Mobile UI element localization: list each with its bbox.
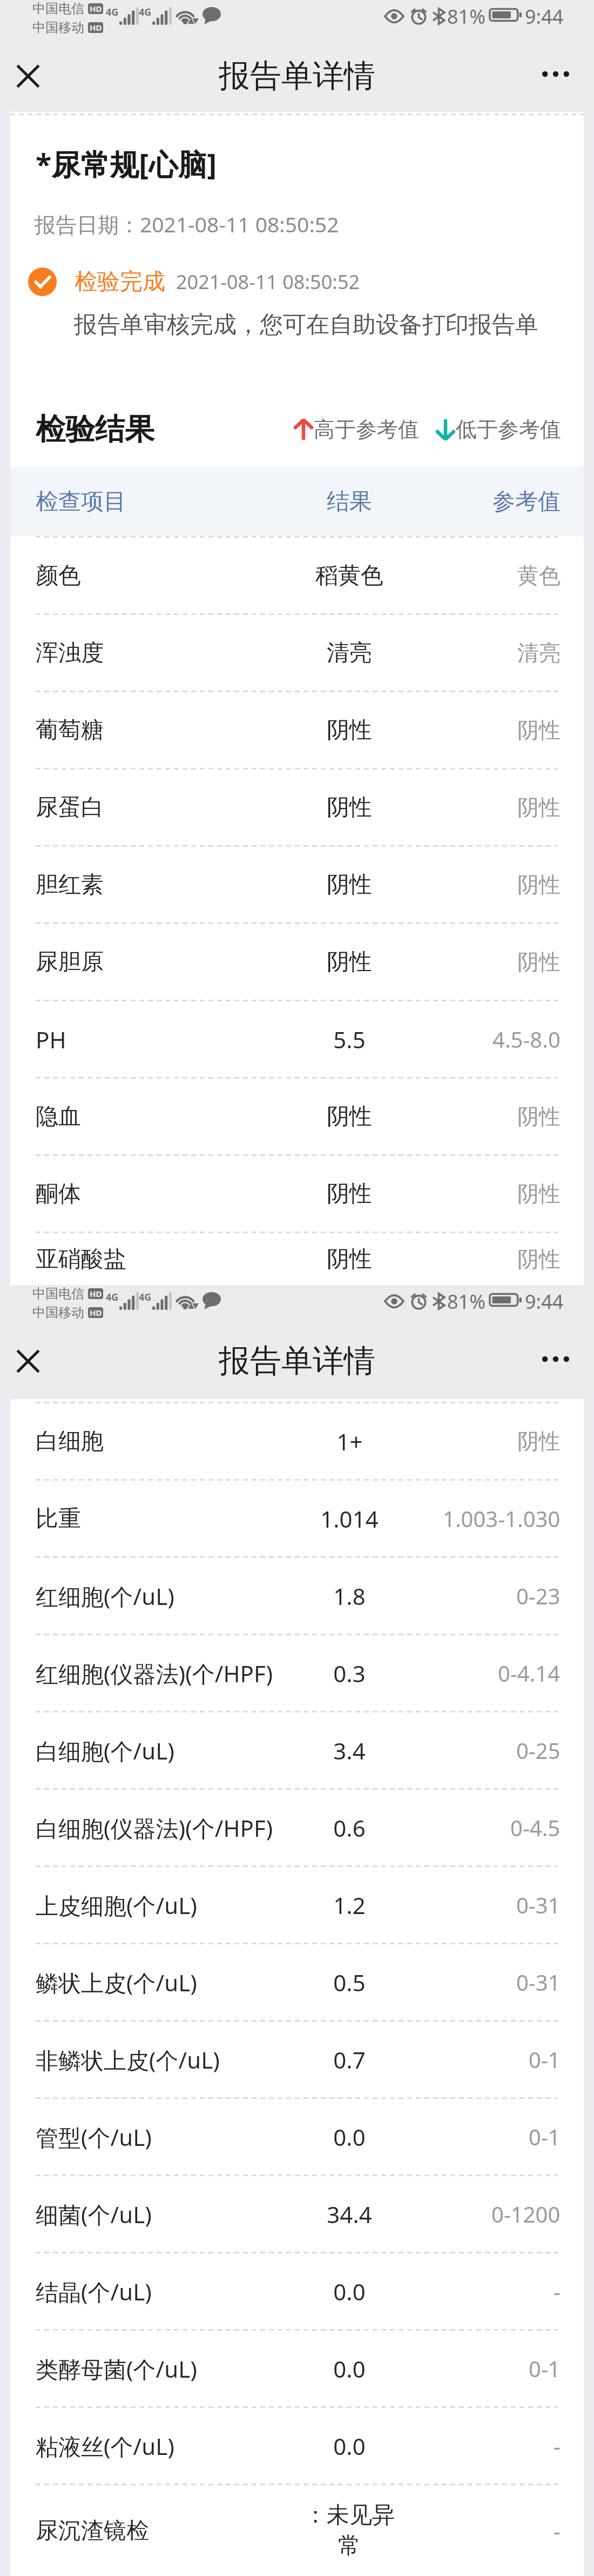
staticText: HD (90, 1307, 102, 1318)
staticText: 0-31 (516, 1890, 561, 1919)
button[interactable]: 鳞状上皮(个/uL) (10, 1944, 584, 2020)
staticText: 2021-08-11 08:50:52 (176, 269, 360, 295)
button[interactable]: PH (10, 1001, 584, 1077)
button[interactable]: 酮体 (10, 1156, 584, 1232)
staticText: 1.8 (333, 1581, 366, 1611)
staticText: 检查项目 (36, 487, 126, 516)
staticText: 比重 (36, 1504, 81, 1533)
staticText: 阴性 (327, 948, 372, 976)
staticText: 黄色 (517, 562, 561, 589)
button[interactable]: 颜色 (10, 538, 584, 613)
button[interactable]: 尿胆原 (10, 924, 584, 1000)
staticText: 阴性 (327, 1245, 372, 1274)
staticText: 报告单详情 (219, 56, 375, 96)
staticText: 尿沉渣镜检 (36, 2517, 149, 2545)
button[interactable]: 尿沉渣镜检 (10, 2485, 584, 2576)
staticText: 0.7 (333, 2044, 366, 2075)
button[interactable]: 管型(个/uL) (10, 2099, 584, 2174)
staticText: 0-23 (516, 1581, 561, 1610)
button[interactable]: 白细胞 (10, 1403, 584, 1479)
staticText: 阴性 (517, 871, 561, 898)
staticText: 非鳞状上皮(个/uL) (36, 2044, 220, 2075)
staticText: 0-1 (529, 2122, 561, 2151)
button[interactable]: Close (6, 55, 50, 98)
staticText: 结果 (327, 487, 372, 516)
button[interactable]: 类酵母菌(个/uL) (10, 2331, 584, 2406)
staticText: 1.014 (320, 1503, 379, 1534)
staticText: 4G (139, 1290, 152, 1304)
staticText: 1+ (336, 1426, 363, 1457)
button[interactable]: More options (534, 1337, 577, 1381)
staticText: 高于参考值 (314, 416, 419, 443)
staticText: 9:44 (525, 3, 564, 30)
staticText: 清亮 (327, 639, 372, 667)
button[interactable]: 白细胞(个/uL) (10, 1712, 584, 1788)
staticText: *尿常规[心脑] (36, 144, 217, 184)
staticText: 稻黄色 (315, 561, 383, 590)
staticText: HD (90, 22, 102, 33)
staticText: 81% (447, 3, 486, 30)
button[interactable]: 亚硝酸盐 (10, 1233, 584, 1285)
staticText: 0-1 (529, 2045, 561, 2074)
button[interactable]: Close (6, 1340, 50, 1383)
staticText: 阴性 (517, 948, 561, 975)
staticText: 0.0 (333, 2353, 366, 2384)
staticText: 4.5-8.0 (492, 1025, 561, 1054)
button[interactable]: 白细胞(仪器法)(个/HPF) (10, 1790, 584, 1865)
staticText: 阴性 (327, 716, 372, 745)
staticText: 鳞状上皮(个/uL) (36, 1967, 197, 1998)
staticText: 管型(个/uL) (36, 2122, 152, 2152)
button[interactable]: 胆红素 (10, 847, 584, 922)
staticText: 0-4.14 (498, 1658, 561, 1688)
button[interactable]: 浑浊度 (10, 615, 584, 691)
staticText: 白细胞(个/uL) (36, 1735, 174, 1766)
button[interactable]: 非鳞状上皮(个/uL) (10, 2022, 584, 2097)
button[interactable]: 葡萄糖 (10, 692, 584, 768)
button[interactable]: More options (534, 52, 577, 96)
staticText: 0.0 (333, 2431, 366, 2461)
staticText: 9:44 (525, 1288, 564, 1315)
button[interactable]: 上皮细胞(个/uL) (10, 1867, 584, 1943)
staticText: 参考值 (492, 487, 561, 516)
staticText: 4G (106, 5, 119, 19)
staticText: 阴性 (327, 871, 372, 899)
staticText: 葡萄糖 (36, 716, 104, 745)
staticText: 5.5 (333, 1024, 366, 1055)
button[interactable]: 结晶(个/uL) (10, 2253, 584, 2329)
button[interactable]: 比重 (10, 1481, 584, 1556)
staticText: 尿胆原 (36, 948, 104, 976)
staticText: 上皮细胞(个/uL) (36, 1890, 197, 1921)
staticText: PH (36, 1024, 66, 1055)
staticText: 0-25 (516, 1736, 561, 1765)
button[interactable]: 红细胞(个/uL) (10, 1558, 584, 1634)
staticText: 酮体 (36, 1180, 81, 1208)
staticText: 4G (139, 5, 152, 19)
staticText: 报告单审核完成，您可在自助设备打印报告单 (74, 310, 538, 339)
staticText: 阴性 (327, 1102, 372, 1131)
staticText: 34.4 (327, 2199, 372, 2230)
button[interactable]: 隐血 (10, 1079, 584, 1154)
staticText: 红细胞(个/uL) (36, 1581, 174, 1611)
button[interactable]: 粘液丝(个/uL) (10, 2408, 584, 2484)
button[interactable]: 细菌(个/uL) (10, 2176, 584, 2252)
staticText: 报告单详情 (219, 1341, 375, 1381)
staticText: ：未见异常 (294, 2501, 404, 2560)
staticText: 低于参考值 (456, 416, 561, 443)
staticText: 0-31 (516, 1968, 561, 1997)
staticText: 亚硝酸盐 (36, 1245, 126, 1274)
staticText: 0-4.5 (510, 1813, 561, 1842)
staticText: 粘液丝(个/uL) (36, 2431, 174, 2461)
staticText: 0-1200 (491, 2199, 561, 2229)
staticText: 中国移动 (32, 1304, 84, 1321)
staticText: 结晶(个/uL) (36, 2276, 152, 2307)
staticText: 中国移动 (32, 19, 84, 36)
staticText: 0.0 (333, 2276, 366, 2307)
staticText: - (553, 2516, 561, 2545)
staticText: 1.2 (333, 1890, 366, 1921)
staticText: 报告日期：2021-08-11 08:50:52 (35, 210, 339, 238)
staticText: 白细胞(仪器法)(个/HPF) (36, 1812, 273, 1843)
button[interactable]: 尿蛋白 (10, 770, 584, 845)
staticText: 1.003-1.030 (443, 1504, 561, 1533)
staticText: 阴性 (517, 1428, 561, 1455)
button[interactable]: 红细胞(仪器法)(个/HPF) (10, 1635, 584, 1711)
